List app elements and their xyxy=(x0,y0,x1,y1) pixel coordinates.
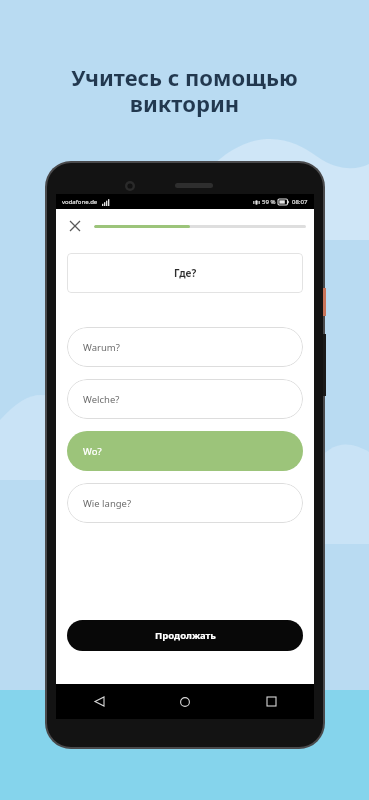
button[interactable]: Close xyxy=(64,215,86,237)
button[interactable]: Recent apps xyxy=(228,684,314,719)
button[interactable]: Wo? xyxy=(67,431,303,471)
button[interactable]: Back xyxy=(56,684,142,719)
staticText: Продолжать xyxy=(155,629,216,642)
staticText: Wie lange? xyxy=(83,497,132,510)
staticText: Warum? xyxy=(83,341,120,354)
staticText: 08:07 xyxy=(292,198,308,206)
button[interactable]: Продолжать xyxy=(67,620,303,651)
button[interactable]: Где? xyxy=(67,253,303,293)
staticText: vodafone.de xyxy=(62,198,98,206)
staticText: Где? xyxy=(174,266,197,280)
button[interactable]: Welche? xyxy=(67,379,303,419)
staticText: Wo? xyxy=(83,445,102,458)
button[interactable]: Warum? xyxy=(67,327,303,367)
button[interactable]: Home xyxy=(142,684,228,719)
staticText: Учитесь с помощью викторин xyxy=(20,62,349,119)
staticText: Welche? xyxy=(83,393,120,406)
button[interactable]: Wie lange? xyxy=(67,483,303,523)
staticText: 59 % xyxy=(262,198,276,206)
